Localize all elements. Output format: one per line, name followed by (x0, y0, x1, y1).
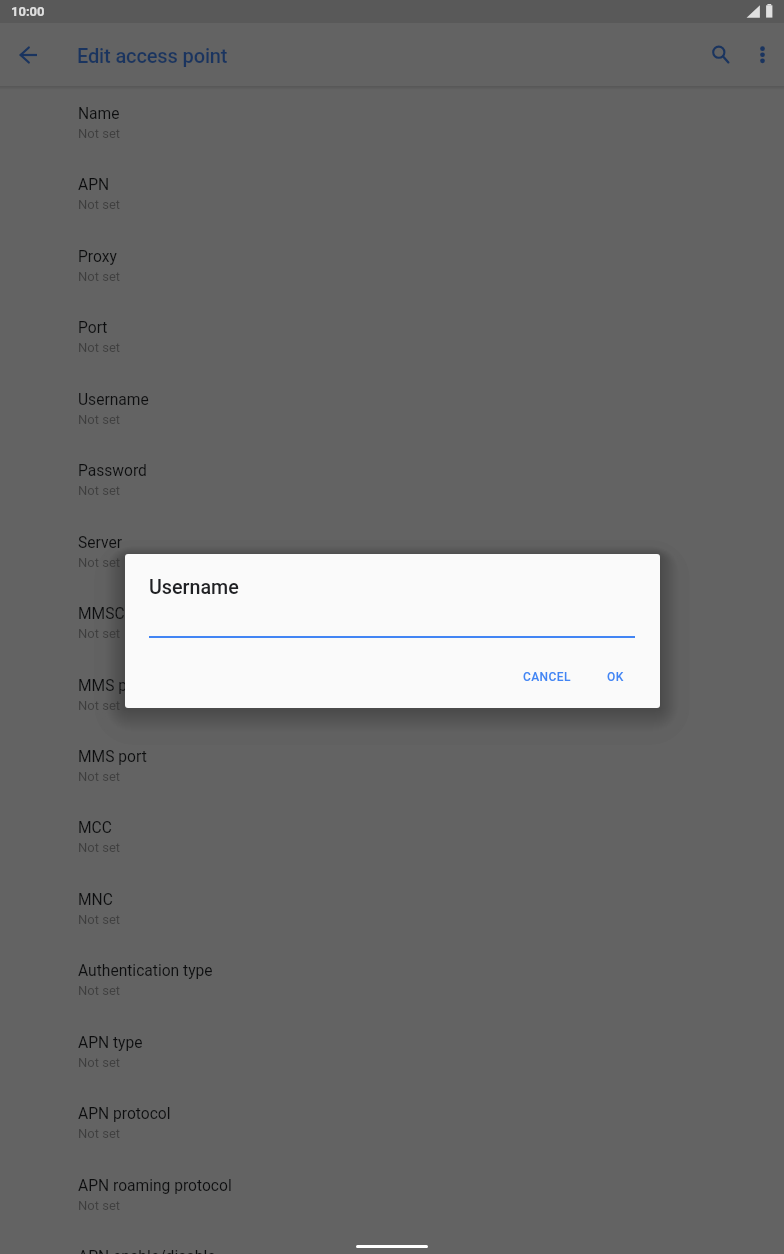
button[interactable]: CANCEL (507, 659, 587, 695)
staticText: OK (607, 670, 624, 684)
button[interactable]: Password (0, 438, 784, 509)
staticText: Name (78, 105, 120, 123)
button[interactable]: Navigate up (6, 33, 50, 77)
staticText: MMSC (78, 605, 125, 623)
staticText: Not set (78, 769, 121, 784)
button[interactable]: Search (698, 32, 742, 76)
button[interactable]: APN roaming protocol (0, 1153, 784, 1224)
staticText: Not set (78, 126, 121, 141)
button[interactable]: More options (741, 32, 784, 76)
staticText: APN protocol (78, 1105, 171, 1123)
staticText: APN roaming protocol (78, 1177, 232, 1195)
staticText: Not set (78, 483, 121, 498)
staticText: Not set (78, 269, 121, 284)
staticText: Not set (78, 840, 121, 855)
staticText: APN type (78, 1034, 143, 1052)
staticText: Not set (78, 1198, 121, 1213)
staticText: Username (78, 391, 149, 409)
staticText: Authentication type (78, 962, 213, 980)
staticText: Password (78, 462, 147, 480)
staticText: 10:00 (11, 4, 45, 19)
button[interactable]: MMS port (0, 724, 784, 795)
staticText: Not set (78, 1126, 121, 1141)
staticText: MMS port (78, 748, 147, 766)
staticText: MCC (78, 819, 112, 837)
button[interactable]: Proxy (0, 224, 784, 295)
button[interactable]: Username (0, 367, 784, 438)
button[interactable]: APN enable/disable (0, 1224, 784, 1254)
staticText: MNC (78, 891, 113, 909)
button[interactable]: Port (0, 295, 784, 366)
button[interactable]: MMS proxy (0, 653, 784, 724)
staticText: Not set (78, 412, 121, 427)
button[interactable]: Name (0, 81, 784, 152)
staticText: Not set (78, 197, 121, 212)
button[interactable]: Server (0, 510, 784, 581)
staticText: Not set (78, 1055, 121, 1070)
staticText: Not set (78, 698, 121, 713)
button[interactable]: MMSC (0, 581, 784, 652)
button[interactable]: APN type (0, 1010, 784, 1081)
button[interactable]: OK (590, 659, 641, 695)
staticText: Not set (78, 555, 121, 570)
button[interactable]: MNC (0, 867, 784, 938)
staticText: Port (78, 319, 108, 337)
button[interactable]: APN protocol (0, 1081, 784, 1152)
button[interactable]: Authentication type (0, 938, 784, 1009)
staticText: CANCEL (523, 670, 571, 684)
staticText: Not set (78, 626, 121, 641)
staticText: Not set (78, 912, 121, 927)
staticText: APN (78, 176, 110, 194)
button[interactable]: MCC (0, 795, 784, 866)
staticText: MMS proxy (78, 677, 157, 695)
button[interactable]: APN (0, 152, 784, 223)
staticText: Edit access point (77, 44, 228, 67)
staticText: APN enable/disable (78, 1248, 216, 1254)
staticText: Not set (78, 340, 121, 355)
staticText: Not set (78, 983, 121, 998)
staticText: Server (78, 534, 122, 552)
staticText: Username (149, 576, 239, 599)
staticText: Proxy (78, 248, 117, 266)
